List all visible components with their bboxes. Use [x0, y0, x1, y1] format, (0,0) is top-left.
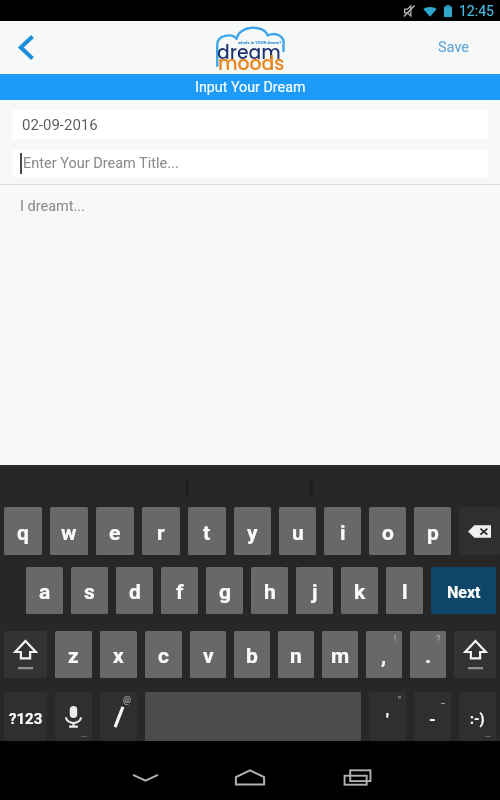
staticText: 12:45	[459, 3, 494, 19]
staticText: 02-09-2016	[22, 116, 98, 134]
staticText: what's in YOUR dream?	[238, 40, 282, 45]
button[interactable]: ?123	[4, 692, 47, 741]
button[interactable]: l	[386, 567, 423, 614]
staticText: l	[402, 580, 408, 605]
staticText: ?123	[9, 710, 43, 728]
button[interactable]: 02-09-2016	[12, 110, 488, 139]
staticText: moods	[218, 50, 285, 76]
button[interactable]: Shift	[454, 631, 496, 678]
button[interactable]: p	[414, 507, 451, 555]
button[interactable]: b	[234, 631, 270, 678]
staticText: y	[247, 521, 258, 546]
button[interactable]: t	[188, 507, 226, 555]
button[interactable]: Next	[431, 567, 496, 614]
button[interactable]: Shift	[4, 631, 47, 678]
staticText: o	[382, 521, 394, 546]
staticText: Save	[438, 39, 470, 56]
staticText: !	[394, 634, 397, 645]
staticText: :-)	[470, 711, 485, 727]
staticText: x	[113, 644, 124, 669]
button[interactable]: s	[71, 567, 108, 614]
button[interactable]: Backspace	[459, 507, 500, 555]
staticText: e	[109, 521, 121, 546]
staticText: ...	[81, 731, 88, 739]
button[interactable]: r	[142, 507, 180, 555]
button[interactable]: Enter Your Dream Title...	[12, 150, 488, 177]
button[interactable]: a	[26, 567, 63, 614]
staticText: _	[441, 695, 446, 706]
button[interactable]: f	[161, 567, 198, 614]
button[interactable]: Voice input	[55, 692, 92, 741]
button[interactable]: u	[279, 507, 316, 555]
staticText: ,	[381, 644, 387, 669]
button[interactable]: d	[116, 567, 153, 614]
button[interactable]: x	[100, 631, 137, 678]
staticText: k	[354, 580, 366, 605]
staticText: "	[398, 695, 401, 706]
button[interactable]: c	[145, 631, 182, 678]
staticText: -	[429, 709, 436, 729]
staticText: q	[17, 521, 29, 546]
staticText: z	[68, 644, 79, 669]
staticText: @	[123, 695, 132, 706]
button[interactable]: y	[234, 507, 271, 555]
staticText: w	[61, 521, 77, 546]
button[interactable]: Recent apps	[327, 748, 387, 800]
button[interactable]: k	[341, 567, 378, 614]
button[interactable]: m	[322, 631, 358, 678]
staticText: Next	[447, 583, 481, 602]
staticText: i	[340, 521, 346, 546]
staticText: n	[290, 644, 302, 669]
staticText: '	[386, 709, 389, 729]
button[interactable]: o	[369, 507, 406, 555]
staticText: d	[129, 580, 141, 605]
staticText: j	[312, 580, 318, 605]
staticText: p	[427, 521, 439, 546]
staticText: ...	[485, 731, 492, 739]
button[interactable]: Save	[422, 21, 500, 74]
staticText: h	[264, 580, 276, 605]
button[interactable]: q	[4, 507, 42, 555]
button[interactable]: Hide keyboard	[115, 748, 175, 800]
staticText: Input Your Dream	[195, 79, 306, 96]
button[interactable]: Back	[0, 21, 52, 74]
staticText: t	[203, 521, 211, 546]
button[interactable]: e	[96, 507, 134, 555]
staticText: I dreamt...	[20, 198, 86, 215]
staticText: .	[425, 644, 432, 669]
staticText: u	[292, 521, 304, 546]
staticText: a	[39, 580, 51, 605]
button[interactable]: j	[296, 567, 333, 614]
button[interactable]: v	[190, 631, 226, 678]
staticText: s	[84, 580, 95, 605]
staticText: b	[246, 644, 258, 669]
staticText: dream	[217, 39, 281, 65]
button[interactable]: i	[324, 507, 361, 555]
staticText: m	[331, 644, 350, 669]
button[interactable]: Home	[220, 748, 280, 800]
button[interactable]: :-)	[459, 692, 496, 741]
button[interactable]: h	[251, 567, 288, 614]
staticText: r	[157, 521, 165, 546]
button[interactable]: w	[50, 507, 88, 555]
button[interactable]: '	[369, 692, 406, 741]
button[interactable]: ,	[366, 631, 402, 678]
staticText: c	[158, 644, 169, 669]
button[interactable]: n	[278, 631, 314, 678]
staticText: Enter Your Dream Title...	[23, 155, 179, 172]
button[interactable]: g	[206, 567, 243, 614]
button[interactable]: .	[410, 631, 446, 678]
button[interactable]: -	[414, 692, 451, 741]
staticText: f	[176, 580, 184, 605]
staticText: g	[219, 580, 231, 605]
staticText: ?	[436, 634, 441, 645]
staticText: v	[203, 644, 214, 669]
button[interactable]: Slash	[100, 692, 137, 741]
button[interactable]: z	[55, 631, 92, 678]
